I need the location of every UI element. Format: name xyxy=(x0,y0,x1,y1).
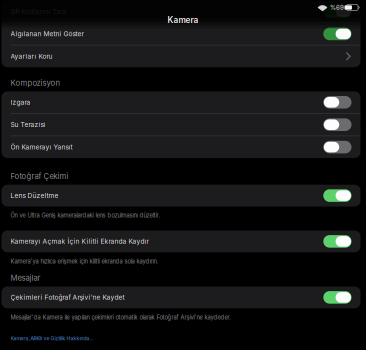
button[interactable]: Ön Kamerayı Yansıt xyxy=(1,136,360,158)
button[interactable]: Çekimleri Fotoğraf Arşivi'ne Kaydet xyxy=(1,286,360,308)
staticText: Su Terazisi xyxy=(10,121,45,129)
button[interactable]: Switch xyxy=(323,118,351,131)
button[interactable]: Ayarları Koru xyxy=(1,45,360,67)
staticText: Mesajlar'da Kamera ile yapılan çekimleri… xyxy=(10,314,231,321)
staticText: Fotoğraf Çekimi xyxy=(10,172,68,181)
button[interactable]: Switch xyxy=(323,96,351,109)
staticText: Kompozisyon xyxy=(10,78,60,88)
button[interactable]: Kamerayı Açmak İçin Kilitli Ekranda Kayd… xyxy=(1,230,360,252)
button[interactable]: Switch xyxy=(323,28,351,40)
button[interactable]: Switch xyxy=(323,189,351,202)
staticText: %69 xyxy=(330,4,344,11)
button[interactable]: Lens Düzeltme xyxy=(1,185,360,206)
staticText: Ön Kamerayı Yansıt xyxy=(10,143,72,151)
button[interactable]: Switch xyxy=(323,235,351,248)
button[interactable]: Switch xyxy=(323,141,351,153)
staticText: Kamerayı Açmak İçin Kilitli Ekranda Kayd… xyxy=(10,237,148,245)
staticText: Mesajlar xyxy=(10,273,40,283)
button[interactable]: Algılanan Metni Göster xyxy=(1,23,360,45)
staticText: Ön ve Ultra Geniş kameralardaki lens boz… xyxy=(10,212,160,219)
button[interactable]: Su Terazisi xyxy=(1,114,360,136)
staticText: Lens Düzeltme xyxy=(10,192,58,200)
staticText: Çekimleri Fotoğraf Arşivi'ne Kaydet xyxy=(10,293,124,301)
staticText: Kamera xyxy=(167,15,198,25)
staticText: Kamera'ya hızlıca erişmek için kilitli e… xyxy=(10,258,158,265)
button[interactable]: Switch xyxy=(323,291,351,304)
button[interactable]: Izgara xyxy=(1,91,360,113)
button[interactable]: Kamera, ARKit ve Gizlilik Hakkında… xyxy=(10,334,360,342)
staticText: Algılanan Metni Göster xyxy=(10,30,83,38)
button[interactable]: QR Kodlarını Tara xyxy=(1,1,360,22)
button[interactable]: Switch xyxy=(323,5,351,18)
staticText: Kamera, ARKit ve Gizlilik Hakkında… xyxy=(10,335,93,341)
staticText: Izgara xyxy=(10,98,30,106)
staticText: QR Kodlarını Tara xyxy=(10,7,66,15)
staticText: Ayarları Koru xyxy=(10,52,52,60)
